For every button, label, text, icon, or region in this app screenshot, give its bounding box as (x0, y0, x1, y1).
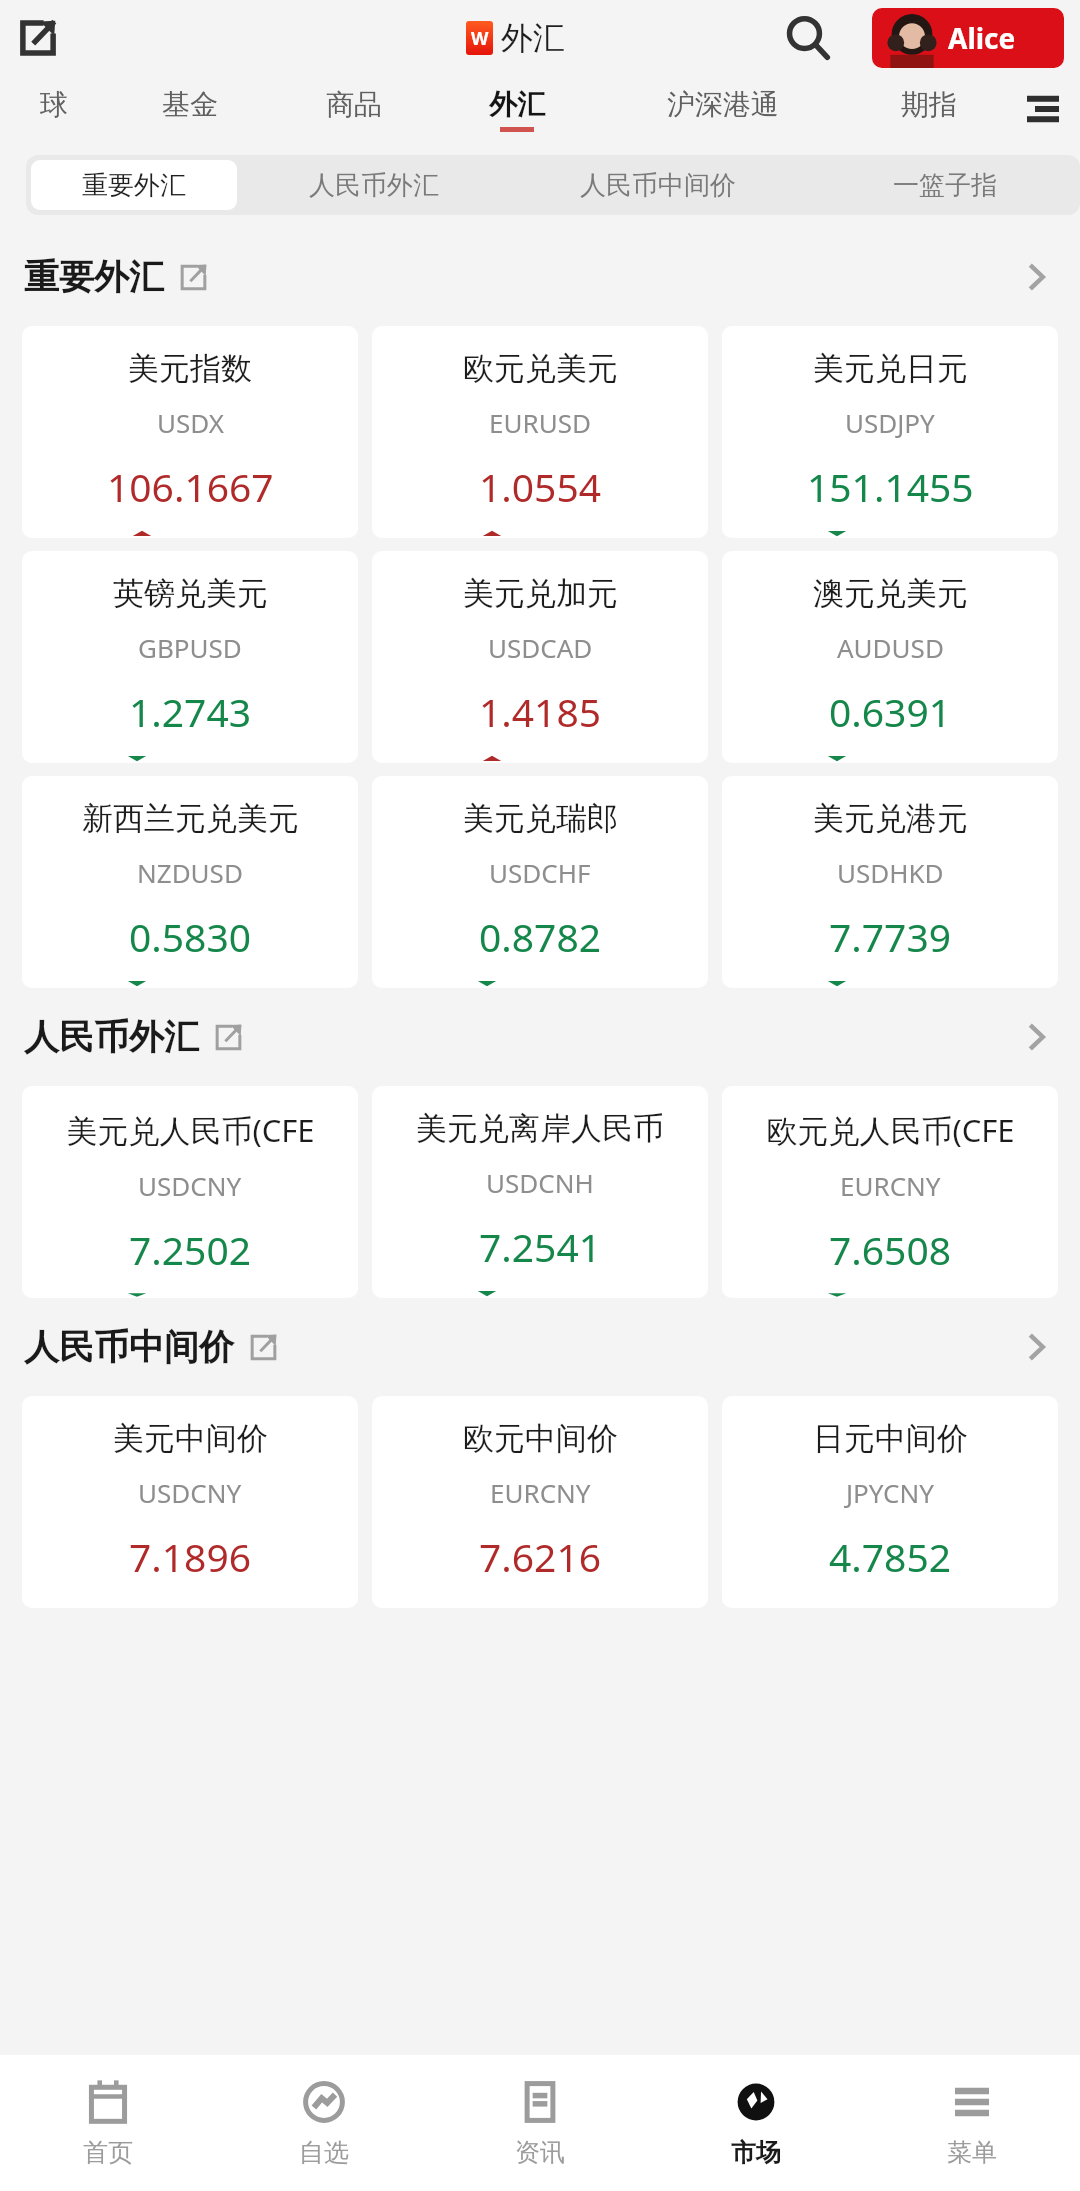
button[interactable]: 日元中间价 (722, 1396, 1058, 1608)
staticText: 菜单 (947, 2137, 997, 2168)
staticText: 首页 (83, 2137, 133, 2168)
staticText: 106.1667 (107, 460, 274, 513)
button[interactable]: 澳元兑美元 (722, 551, 1058, 763)
button[interactable]: 美元兑离岸人民币 (372, 1086, 708, 1298)
staticText: 新西兰元兑美元 (82, 799, 299, 838)
staticText: 重要外汇 (82, 169, 186, 202)
button[interactable]: 人民币中间价 (506, 155, 809, 215)
button[interactable]: 美元兑加元 (372, 551, 708, 763)
staticText: USDCNY (138, 1168, 242, 1203)
staticText: USDCAD (488, 630, 593, 665)
staticText: 1.2743 (129, 685, 251, 738)
button[interactable]: 沪深港通 (598, 76, 847, 142)
staticText: 人民币中间价 (24, 1325, 234, 1369)
staticText: 1.0554 (479, 460, 601, 513)
staticText: 人民币中间价 (580, 169, 736, 202)
staticText: 0.8782 (479, 910, 601, 963)
button[interactable]: 商品 (272, 76, 435, 142)
staticText: 151.1455 (807, 460, 974, 513)
button[interactable]: 英镑兑美元 (22, 551, 358, 763)
staticText: 美元指数 (128, 349, 252, 388)
button[interactable]: 重要外汇 (31, 160, 237, 210)
staticText: 7.2502 (129, 1223, 251, 1276)
button[interactable]: 新西兰元兑美元 (22, 776, 358, 988)
button[interactable]: 人民币外汇 (242, 155, 506, 215)
button[interactable]: 期指 (847, 76, 1010, 142)
button[interactable]: 美元指数 (22, 326, 358, 538)
staticText: NZDUSD (137, 855, 243, 890)
staticText: W (471, 26, 489, 51)
staticText: 期指 (901, 87, 957, 122)
staticText: 1.4185 (479, 685, 601, 738)
button[interactable]: Open external (14, 14, 62, 62)
staticText: 7.1896 (129, 1530, 251, 1583)
staticText: 一篮子指 (893, 169, 997, 202)
button[interactable]: 人民币外汇 (24, 1015, 242, 1059)
staticText: 7.2541 (479, 1220, 601, 1273)
button[interactable]: 人民币中间价 (24, 1325, 277, 1369)
button[interactable]: 欧元兑人民币(CFE (722, 1086, 1058, 1298)
button[interactable]: 市场 (648, 2055, 864, 2191)
staticText: 市场 (731, 2137, 781, 2168)
staticText: EURUSD (489, 405, 591, 440)
staticText: 美元兑离岸人民币 (416, 1109, 664, 1148)
button[interactable]: 自选 (216, 2055, 432, 2191)
staticText: 沪深港通 (667, 87, 779, 122)
button[interactable]: 菜单 (864, 2055, 1080, 2191)
staticText: 7.7739 (829, 910, 951, 963)
staticText: 7.6216 (479, 1530, 601, 1583)
button[interactable]: See more 人民币外汇 (1006, 1008, 1064, 1066)
staticText: 0.6391 (829, 685, 951, 738)
staticText: 英镑兑美元 (113, 574, 268, 613)
button[interactable]: 美元中间价 (22, 1396, 358, 1608)
button[interactable]: 美元兑瑞郎 (372, 776, 708, 988)
button[interactable]: 美元兑日元 (722, 326, 1058, 538)
staticText: 美元中间价 (113, 1419, 268, 1458)
button[interactable]: 美元兑港元 (722, 776, 1058, 988)
staticText: EURCNY (490, 1475, 591, 1510)
button[interactable]: 重要外汇 (24, 255, 207, 299)
staticText: USDCHF (489, 855, 591, 890)
staticText: 重要外汇 (24, 255, 164, 299)
staticText: 欧元兑人民币(CFE (766, 1109, 1015, 1151)
button[interactable]: 球 (0, 76, 108, 142)
button[interactable]: 一篮子指 (809, 155, 1080, 215)
staticText: 美元兑加元 (463, 574, 618, 613)
button[interactable]: 首页 (0, 2055, 216, 2191)
staticText: 日元中间价 (813, 1419, 968, 1458)
staticText: GBPUSD (138, 630, 242, 665)
staticText: Alice (948, 19, 1016, 57)
staticText: EURCNY (840, 1168, 941, 1203)
staticText: USDHKD (837, 855, 944, 890)
staticText: 资讯 (515, 2137, 565, 2168)
staticText: 自选 (299, 2137, 349, 2168)
button[interactable]: Search (780, 10, 836, 66)
staticText: USDX (157, 405, 224, 440)
button[interactable]: See more 人民币中间价 (1006, 1318, 1064, 1376)
button[interactable]: W (466, 18, 565, 58)
button[interactable]: 美元兑人民币(CFE (22, 1086, 358, 1298)
button[interactable]: Alice (872, 8, 1064, 68)
staticText: 基金 (162, 87, 218, 122)
staticText: AUDUSD (837, 630, 944, 665)
button[interactable]: 欧元中间价 (372, 1396, 708, 1608)
staticText: USDCNH (486, 1165, 594, 1200)
button[interactable]: 欧元兑美元 (372, 326, 708, 538)
button[interactable]: 基金 (108, 76, 272, 142)
button[interactable]: See more 重要外汇 (1006, 248, 1064, 306)
staticText: 球 (40, 87, 68, 122)
button[interactable]: 资讯 (432, 2055, 648, 2191)
button[interactable]: 外汇 (435, 76, 598, 142)
staticText: USDJPY (845, 405, 935, 440)
button[interactable]: All categories (1014, 80, 1072, 138)
